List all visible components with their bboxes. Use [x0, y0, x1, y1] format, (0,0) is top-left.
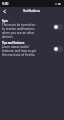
staticText: Tips and features [2, 41, 25, 45]
button[interactable]: Back [1, 8, 8, 15]
button[interactable]: Tips and features [0, 41, 64, 57]
staticText: Notifications [23, 9, 41, 13]
staticText: This must be turned on to receive notifi… [2, 23, 38, 39]
button[interactable]: Toggle setting [53, 24, 63, 30]
staticText: Sync [2, 19, 8, 23]
staticText: Learn about useful features and how to g… [2, 45, 38, 57]
staticText: 9:30 [2, 2, 9, 6]
button[interactable]: Toggle setting [53, 46, 63, 52]
button[interactable]: Sync [0, 19, 64, 39]
